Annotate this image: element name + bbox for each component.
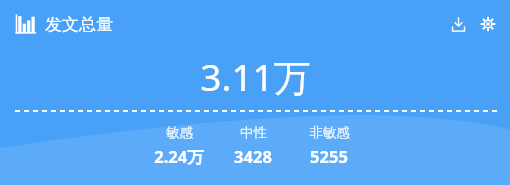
button[interactable]: Download	[445, 11, 471, 37]
button[interactable]: 敏感	[142, 124, 216, 168]
button[interactable]: 非敏感	[290, 124, 368, 167]
button[interactable]: Settings	[475, 11, 501, 37]
staticText: 中性	[240, 124, 267, 141]
staticText: 2.24万	[154, 145, 204, 168]
staticText: 非敏感	[309, 124, 350, 141]
staticText: 5255	[310, 145, 348, 167]
staticText: 3.11万	[200, 51, 311, 102]
button[interactable]: 发文总量	[15, 14, 113, 35]
staticText: 敏感	[166, 124, 193, 141]
button[interactable]: 中性	[216, 124, 290, 167]
staticText: 发文总量	[45, 14, 113, 35]
staticText: 3428	[234, 145, 272, 167]
